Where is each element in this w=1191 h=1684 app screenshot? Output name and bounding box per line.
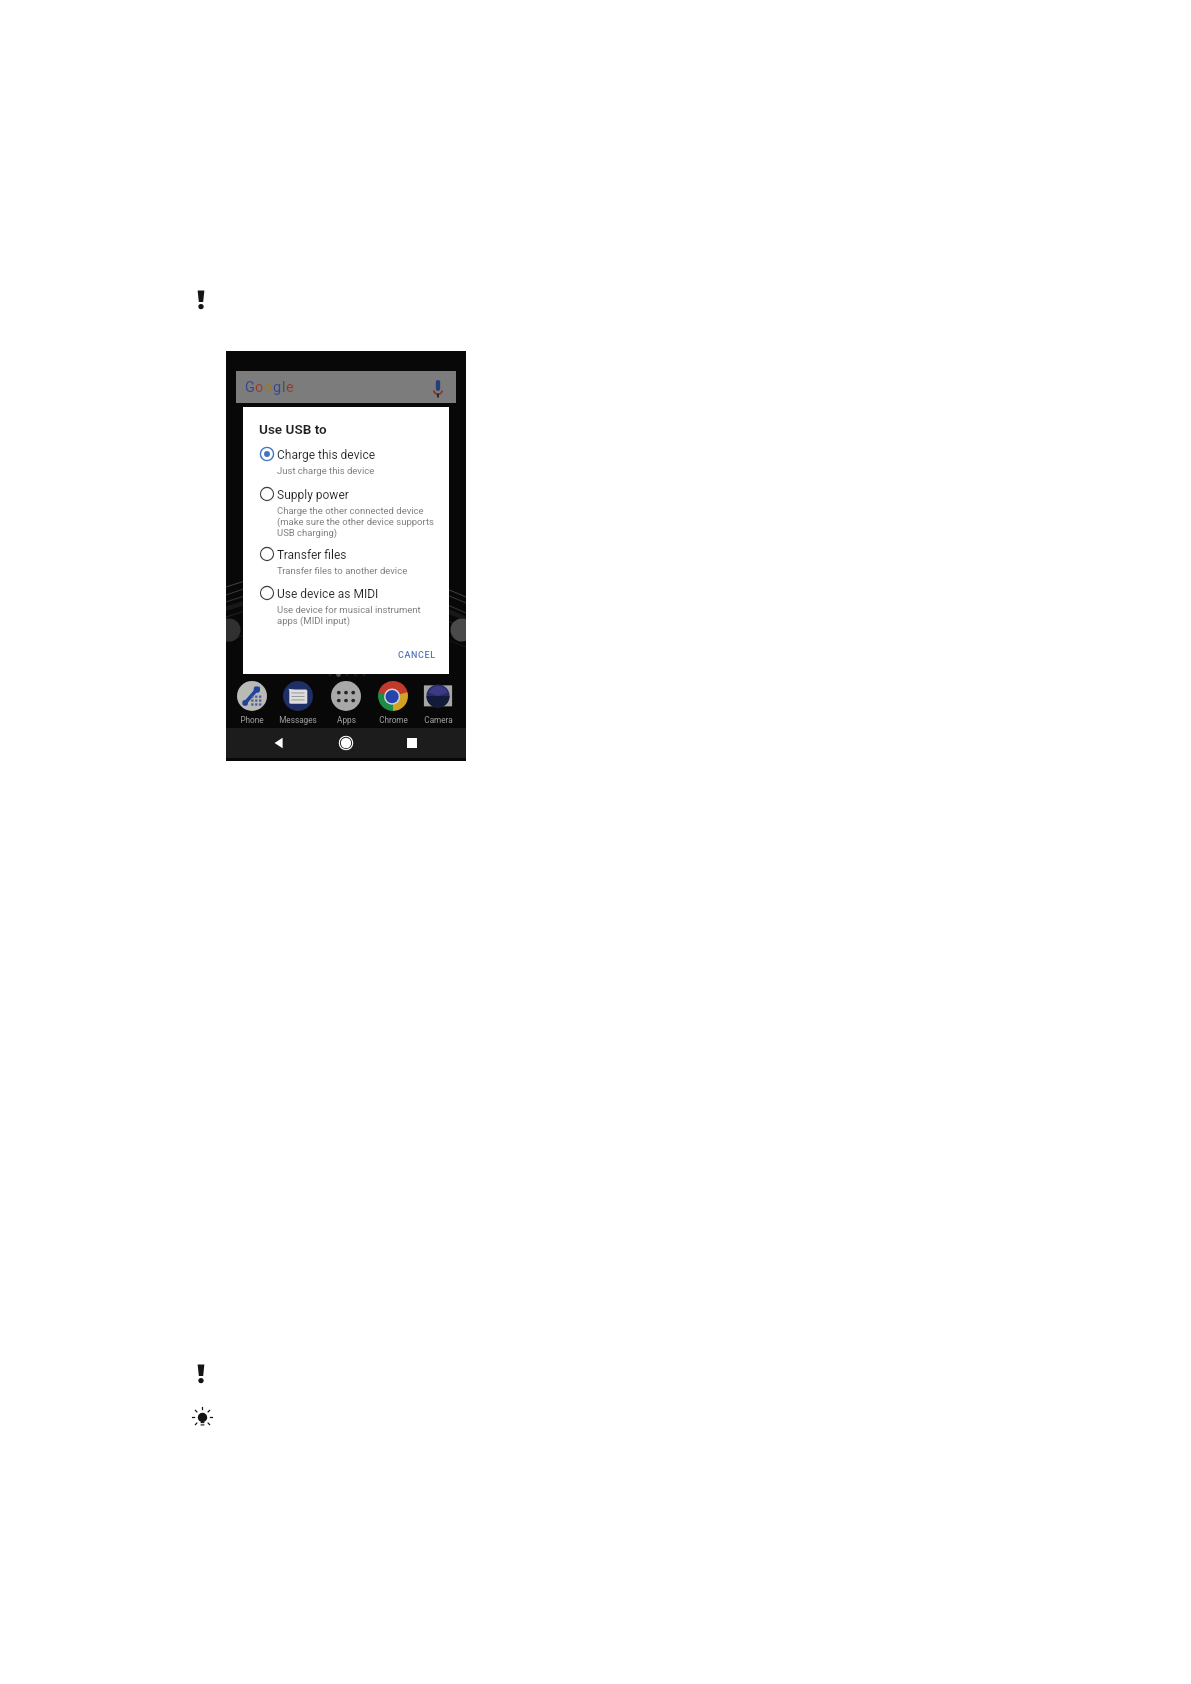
staticText: Apps: [337, 715, 356, 725]
staticText: G: [245, 379, 255, 396]
button[interactable]: Messages: [274, 681, 322, 725]
staticText: Charge the other connected device: [277, 505, 424, 516]
button[interactable]: Home: [331, 728, 361, 758]
staticText: Charge this device: [277, 448, 376, 462]
button[interactable]: Use device as MIDI: [253, 583, 443, 625]
staticText: e: [286, 379, 294, 396]
staticText: Just charge this device: [277, 465, 375, 476]
staticText: CANCEL: [398, 650, 436, 661]
button[interactable]: Chrome: [369, 681, 417, 725]
button[interactable]: Apps: [322, 681, 370, 725]
staticText: Messages: [279, 715, 317, 725]
button[interactable]: Transfer files: [253, 544, 443, 575]
button[interactable]: Supply power: [253, 484, 443, 537]
staticText: Transfer files: [277, 548, 347, 562]
staticText: Transfer files to another device: [277, 565, 408, 576]
staticText: Use device for musical instrument: [277, 604, 421, 615]
button[interactable]: Charge this device: [253, 444, 443, 475]
staticText: Camera: [424, 715, 453, 725]
staticText: o: [264, 379, 273, 396]
staticText: USB charging): [277, 527, 338, 538]
button[interactable]: Phone: [228, 681, 276, 725]
button[interactable]: G: [236, 371, 456, 403]
button[interactable]: Back: [264, 728, 294, 758]
staticText: Use device as MIDI: [277, 587, 379, 601]
staticText: o: [255, 379, 264, 396]
staticText: Phone: [240, 715, 264, 725]
button[interactable]: Camera: [414, 681, 462, 725]
staticText: l: [282, 379, 286, 396]
button[interactable]: CANCEL: [392, 645, 442, 666]
button[interactable]: Recent apps: [397, 728, 427, 758]
staticText: g: [273, 379, 282, 396]
staticText: Chrome: [379, 715, 408, 725]
staticText: (make sure the other device supports: [277, 516, 434, 527]
staticText: apps (MIDI input): [277, 615, 350, 626]
staticText: Supply power: [277, 488, 349, 502]
staticText: Use USB to: [259, 421, 327, 437]
button[interactable]: Voice search: [432, 379, 444, 398]
